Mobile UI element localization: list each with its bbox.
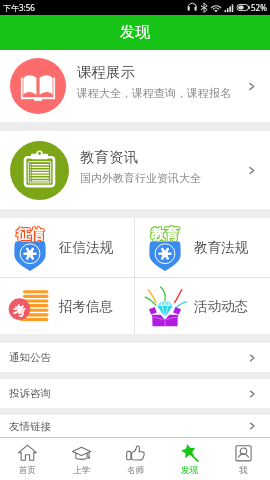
staticText: 征信法规 — [59, 239, 113, 256]
button[interactable]: 友情链接 — [0, 415, 270, 437]
button[interactable]: 考 — [0, 278, 134, 334]
staticText: 招考信息 — [59, 298, 113, 315]
staticText: 发现 — [181, 465, 198, 476]
staticText: 教育法规 — [194, 239, 248, 256]
button[interactable]: 活动动态 — [135, 278, 270, 334]
staticText: 我 — [239, 465, 248, 476]
button[interactable]: 课程展示 — [0, 50, 270, 122]
staticText: 教育 — [152, 226, 180, 244]
staticText: 友情链接 — [9, 420, 247, 433]
staticText: 课程大全，课程查询，课程报名 — [77, 86, 231, 100]
staticText: 首页 — [19, 465, 36, 476]
staticText: 征信 — [16, 225, 44, 243]
staticText: 教育 — [150, 227, 178, 245]
staticText: 征信 — [17, 226, 45, 244]
staticText: 发现 — [120, 23, 150, 42]
staticText: 通知公告 — [9, 351, 247, 364]
staticText: 教育 — [152, 225, 180, 243]
staticText: 征信 — [17, 225, 45, 243]
button[interactable]: 发现 — [162, 438, 216, 480]
staticText: 教育 — [151, 227, 179, 245]
button[interactable]: 我 — [216, 438, 270, 480]
staticText: 征信 — [16, 227, 44, 245]
staticText: 52% — [251, 2, 267, 13]
button[interactable]: 投诉咨询 — [0, 379, 270, 408]
staticText: 教育 — [152, 227, 180, 245]
button[interactable]: 名师 — [108, 438, 162, 480]
button[interactable]: 教育 — [135, 218, 270, 277]
staticText: 活动动态 — [194, 298, 248, 315]
staticText: 征信 — [15, 227, 43, 245]
button[interactable]: 征信 — [0, 218, 134, 277]
staticText: 征信 — [15, 226, 43, 244]
staticText: 下午3:56 — [3, 2, 35, 13]
staticText: 教育资讯 — [80, 148, 138, 166]
staticText: 上学 — [73, 465, 90, 476]
button[interactable]: 教育资讯 — [0, 131, 270, 209]
button[interactable]: 上学 — [54, 438, 108, 480]
staticText: 名师 — [127, 465, 144, 476]
staticText: 国内外教育行业资讯大全 — [80, 171, 201, 185]
staticText: 征信 — [17, 227, 45, 245]
button[interactable]: 首页 — [0, 438, 54, 480]
staticText: 投诉咨询 — [9, 387, 247, 400]
staticText: 课程展示 — [77, 63, 135, 81]
staticText: 教育 — [151, 225, 179, 243]
staticText: 教育 — [150, 226, 178, 244]
staticText: 教育 — [151, 226, 179, 244]
staticText: 征信 — [16, 226, 44, 244]
button[interactable]: 通知公告 — [0, 343, 270, 372]
staticText: 考 — [13, 303, 25, 318]
staticText: 征信 — [15, 225, 43, 243]
staticText: 教育 — [150, 225, 178, 243]
